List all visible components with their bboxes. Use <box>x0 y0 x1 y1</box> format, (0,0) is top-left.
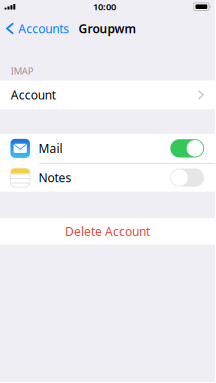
staticText: Accounts <box>18 20 69 36</box>
button[interactable]: Account <box>0 80 215 109</box>
staticText: Delete Account <box>65 223 150 239</box>
button[interactable]: Notes <box>0 163 215 192</box>
button[interactable]: Delete Account <box>0 218 215 245</box>
staticText: Groupwm <box>78 20 136 36</box>
button[interactable]: Accounts <box>0 15 73 41</box>
staticText: Mail <box>38 140 62 156</box>
staticText: Account <box>11 87 56 103</box>
button[interactable]: Mail <box>0 134 215 163</box>
staticText: IMAP <box>11 65 34 77</box>
staticText: 10:00 <box>93 0 116 13</box>
staticText: Notes <box>38 170 71 185</box>
